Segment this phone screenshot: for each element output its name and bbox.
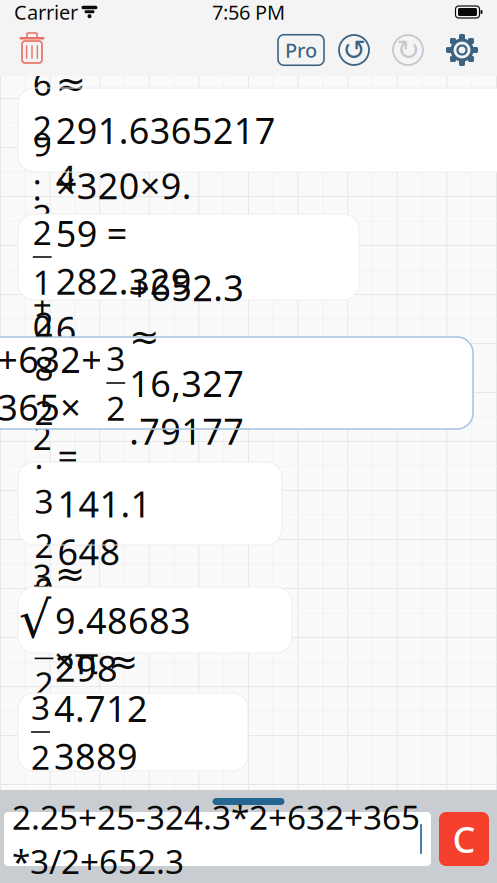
- button[interactable]: 523.32+3562.32+2622: [0, 88, 497, 172]
- staticText: √: [19, 591, 51, 649]
- staticText: +632+365×: [0, 335, 102, 431]
- staticText: 23: [33, 509, 52, 597]
- staticText: Pro: [285, 37, 317, 63]
- button[interactable]: Undo: [327, 28, 381, 72]
- staticText: [78, 3, 81, 21]
- button[interactable]: 9.2: [0, 214, 497, 300]
- staticText: 9.2: [33, 121, 52, 254]
- button[interactable]: Clear history: [10, 28, 54, 72]
- staticText: 2: [106, 386, 125, 430]
- button[interactable]: Clear: [439, 812, 489, 866]
- button[interactable]: +632+365×: [0, 337, 497, 429]
- staticText: 100: [33, 260, 52, 393]
- button[interactable]: √: [0, 587, 497, 653]
- button[interactable]: 2.25+25-324.3*2+632+365*3/2+652.3: [4, 812, 431, 866]
- staticText: C: [452, 815, 475, 863]
- staticText: ≈ 9.48683298: [55, 548, 191, 692]
- staticText: 2.25+25-324.3*2+632+365*3/2+652.3: [12, 795, 420, 883]
- staticText: 3: [31, 685, 50, 729]
- button[interactable]: 3: [0, 693, 497, 771]
- staticText: 523.32+3562.32+2622: [33, 0, 52, 503]
- staticText: 2: [31, 735, 50, 779]
- staticText: +652.3 ≈ 16,327.79177215: [129, 263, 244, 502]
- staticText: 7:56 PM: [212, 0, 285, 25]
- button[interactable]: Pro: [275, 28, 327, 72]
- staticText: ≈ 291.63652174: [56, 58, 276, 202]
- staticText: 282.3296: [34, 301, 53, 656]
- staticText: Carrier: [14, 0, 78, 25]
- button[interactable]: Redo: [381, 28, 435, 72]
- staticText: ↺: [342, 34, 365, 66]
- button[interactable]: Settings: [435, 28, 489, 72]
- staticText: 2: [34, 661, 53, 705]
- staticText: ×π ≈ 4.71238898: [54, 636, 148, 828]
- staticText: 3: [106, 336, 125, 380]
- button[interactable]: 282.3296: [0, 462, 497, 545]
- staticText: ×320×9.59 = 282.3296: [56, 161, 192, 353]
- staticText: = 141.1648: [57, 432, 151, 575]
- staticText: ↻: [396, 34, 419, 66]
